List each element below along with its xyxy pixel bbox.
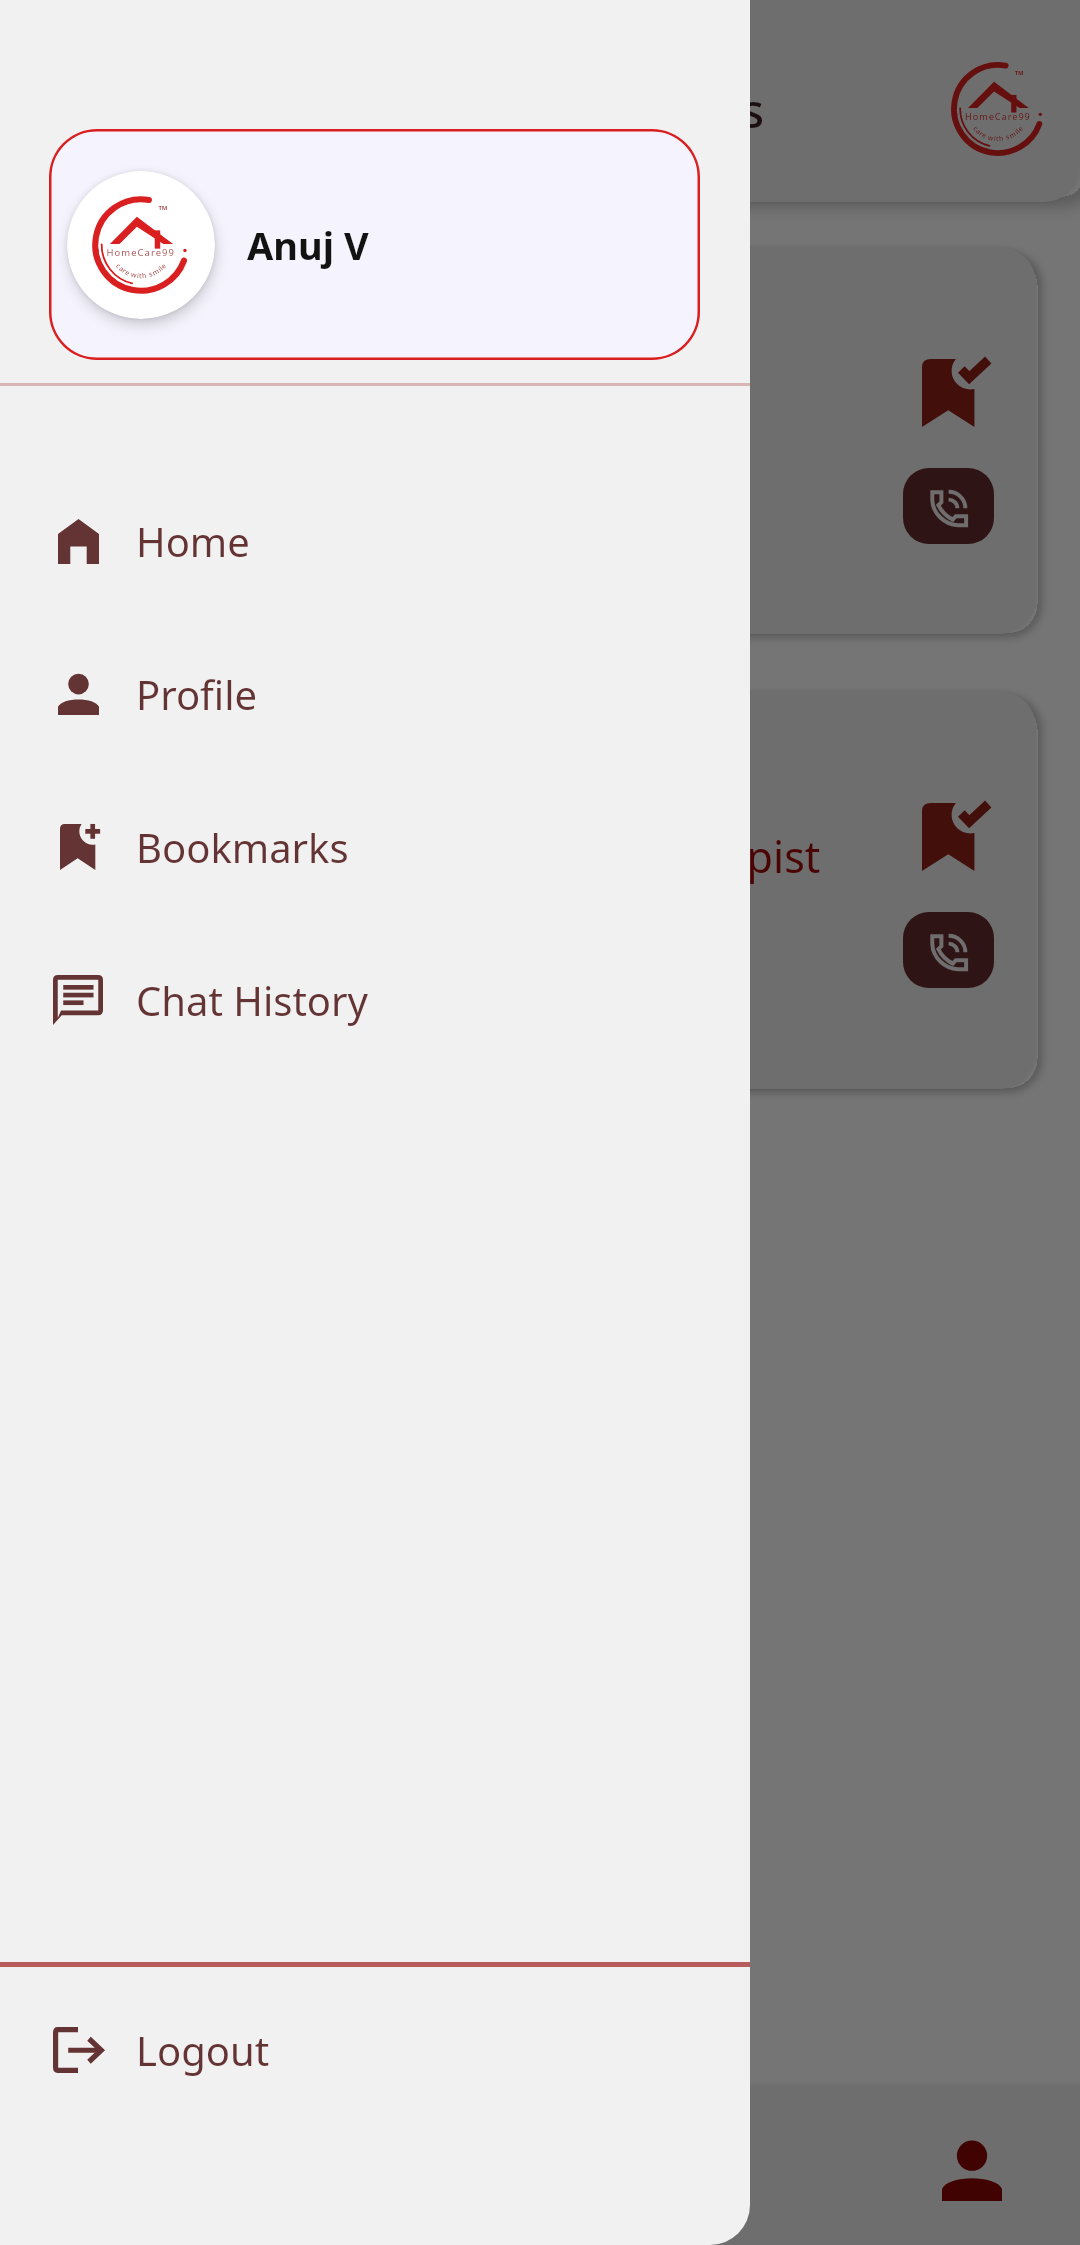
button[interactable]: Close navigation drawer [0,0,1080,2245]
staticText: Home [136,514,250,568]
button[interactable]: Call [903,468,994,544]
button[interactable]: Chat History [0,940,750,1060]
button[interactable]: Bookmarks [0,787,750,907]
staticText: Our Doctors [490,78,765,142]
button[interactable]: Bookmark [922,359,991,427]
button[interactable]: Profile [0,634,750,754]
staticText: Bookmarks [136,820,349,874]
button[interactable]: Logout [0,1990,750,2110]
staticText: Profile [136,667,258,721]
button[interactable]: Anuj V [49,129,700,360]
button[interactable]: Home [0,481,750,601]
staticText: Anuj V [247,219,369,271]
button[interactable]: Call [903,912,994,988]
staticText: Logout [136,2023,270,2077]
button[interactable]: Bookmark [922,803,991,871]
button[interactable]: Profile tab [942,2141,1002,2201]
staticText: Chat History [136,973,368,1027]
staticText: Physiotherapist [507,827,821,886]
